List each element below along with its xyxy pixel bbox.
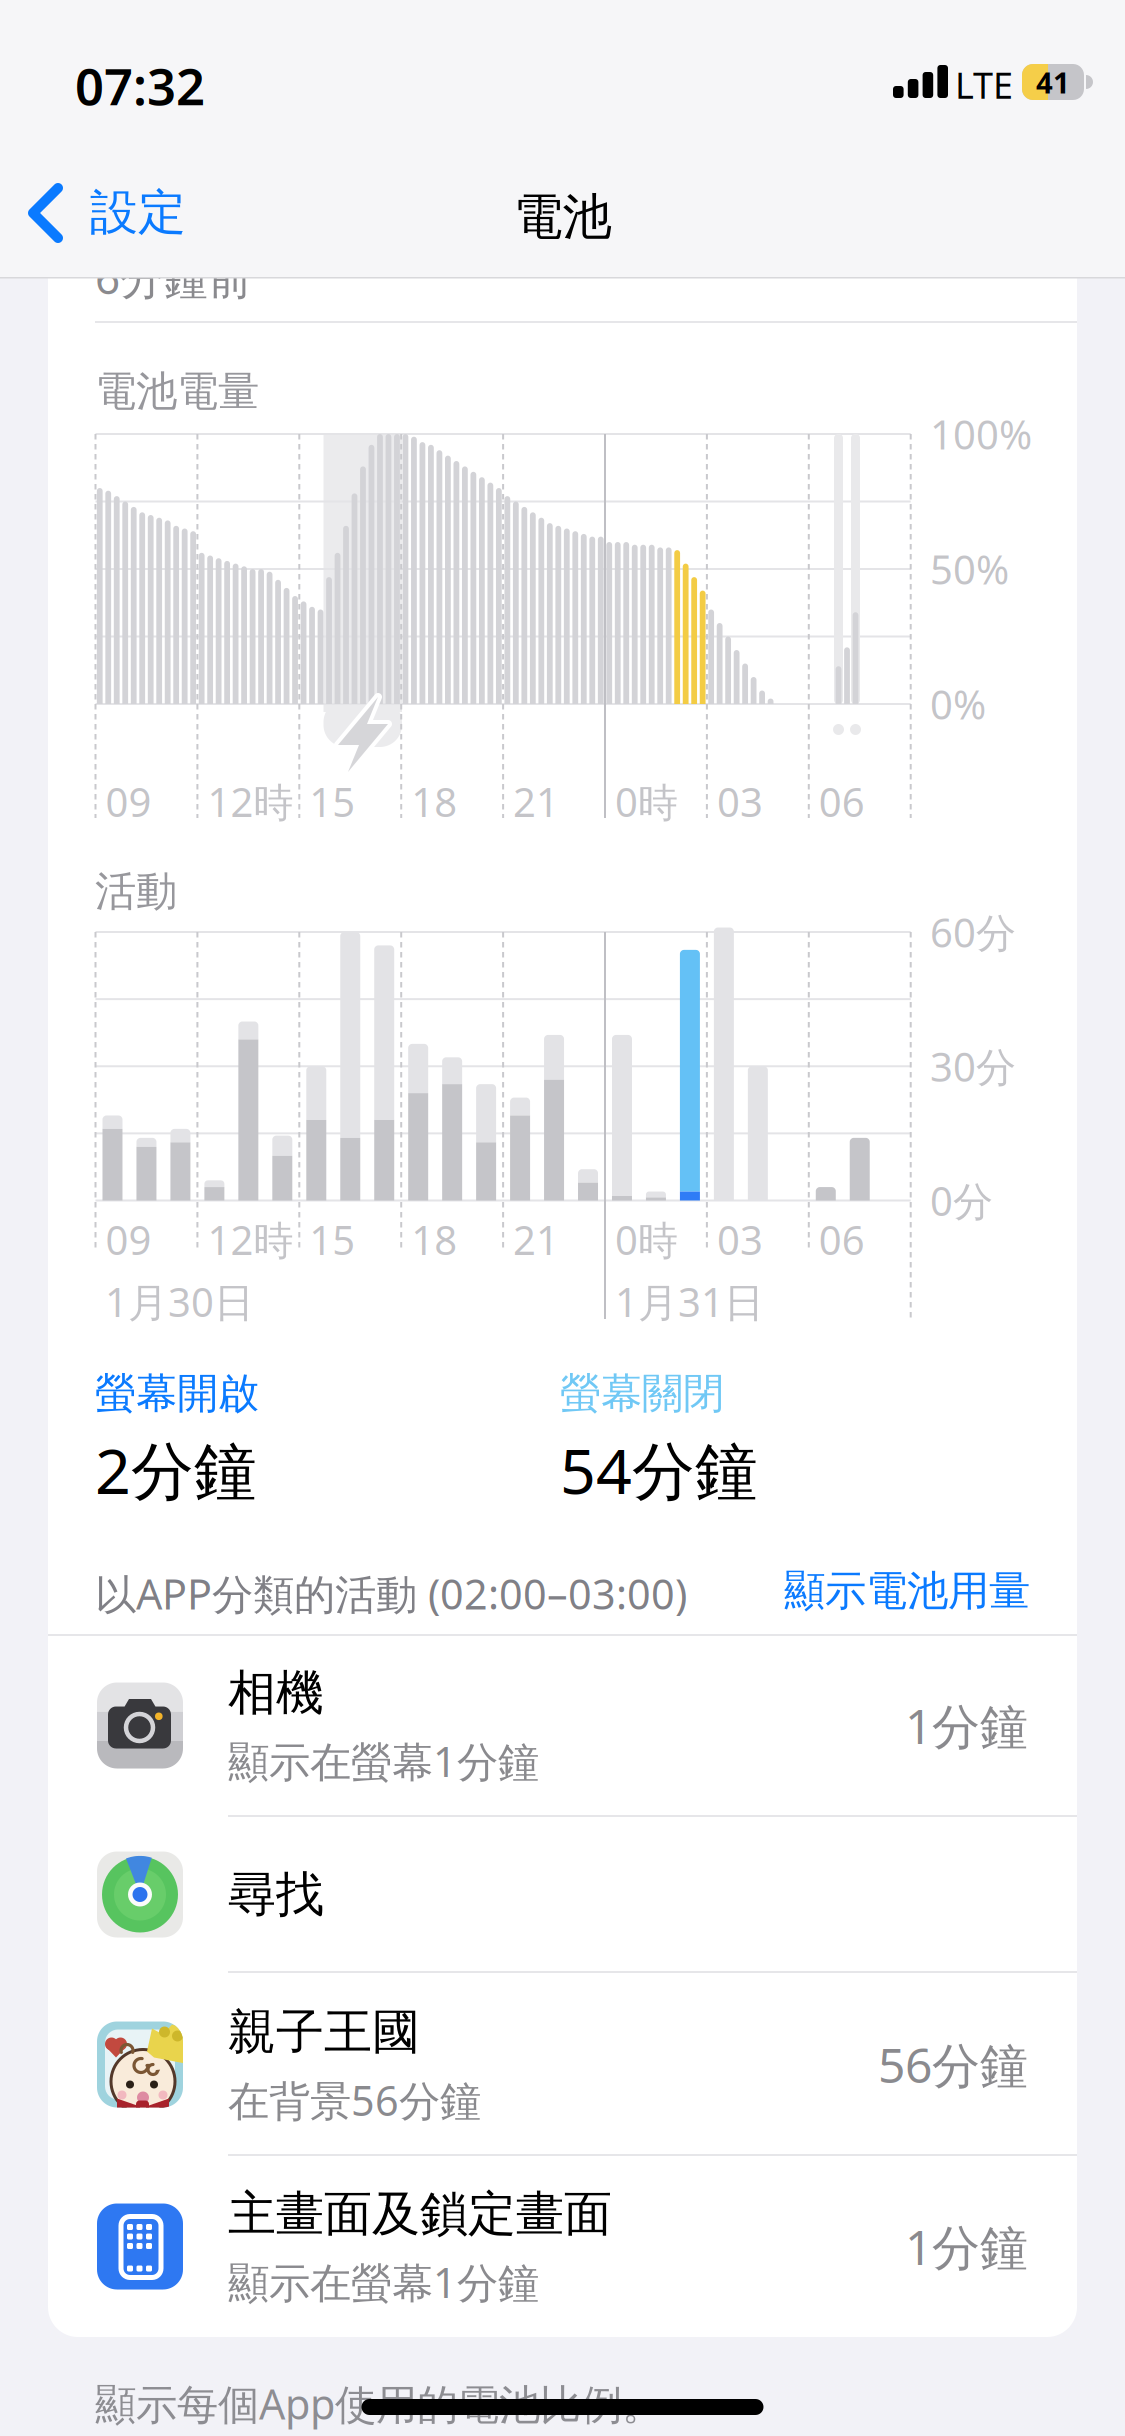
staticText: 18: [411, 1213, 457, 1266]
staticText: 41: [1036, 62, 1070, 101]
staticText: 活動: [95, 866, 177, 917]
button[interactable]: 主畫面及鎖定畫面: [48, 2156, 1077, 2337]
button[interactable]: 設定: [0, 0, 230, 277]
staticText: 顯示在螢幕1分鐘: [228, 1733, 539, 1788]
staticText: 06: [819, 1213, 865, 1266]
staticText: 顯示在螢幕1分鐘: [228, 2254, 539, 2309]
staticText: 1月31日: [615, 1275, 764, 1328]
staticText: 螢幕開啟: [95, 1368, 259, 1419]
staticText: 電池電量: [95, 366, 259, 417]
staticText: 螢幕關閉: [560, 1368, 724, 1419]
staticText: 在背景56分鐘: [228, 2072, 481, 2127]
staticText: 相機: [228, 1663, 324, 1722]
staticText: 顯示電池用量: [784, 1566, 1030, 1616]
staticText: 顯示每個App使用的電池比例。: [95, 2376, 663, 2431]
staticText: 54分鐘: [560, 1428, 758, 1511]
staticText: 03: [717, 1213, 763, 1266]
staticText: 07:32: [75, 52, 205, 119]
staticText: 06: [819, 775, 865, 828]
staticText: 0時: [615, 775, 678, 828]
staticText: 親子王國: [228, 2002, 420, 2061]
staticText: 設定: [90, 183, 186, 242]
button[interactable]: 親子王國: [48, 1973, 1077, 2156]
staticText: 1分鐘: [905, 2215, 1028, 2278]
staticText: 09: [105, 1213, 151, 1266]
staticText: 尋找: [228, 1865, 324, 1924]
staticText: 1分鐘: [905, 1694, 1028, 1757]
staticText: 12時: [207, 775, 293, 828]
staticText: 30分: [930, 1040, 1016, 1093]
button[interactable]: 顯示電池用量: [630, 1566, 1030, 1616]
staticText: 15: [309, 1213, 355, 1266]
staticText: 15: [309, 775, 355, 828]
staticText: 21: [513, 1213, 559, 1266]
staticText: 60分: [930, 905, 1016, 958]
staticText: 電池: [513, 187, 611, 247]
staticText: 6分鐘前: [95, 248, 252, 306]
staticText: 21: [513, 775, 559, 828]
staticText: 12時: [207, 1213, 293, 1266]
staticText: 1月30日: [105, 1275, 254, 1328]
staticText: 18: [411, 775, 457, 828]
button[interactable]: 尋找: [48, 1816, 1077, 1973]
staticText: 56分鐘: [878, 2033, 1028, 2096]
staticText: 03: [717, 775, 763, 828]
staticText: 0時: [615, 1213, 678, 1266]
button[interactable]: 相機: [48, 1635, 1077, 1816]
staticText: 0%: [930, 677, 986, 730]
staticText: 2分鐘: [95, 1428, 257, 1511]
staticText: 主畫面及鎖定畫面: [228, 2184, 612, 2243]
staticText: LTE: [955, 61, 1013, 109]
staticText: 0分: [930, 1174, 993, 1227]
staticText: 100%: [930, 407, 1032, 460]
staticText: 09: [105, 775, 151, 828]
staticText: 以APP分類的活動 (02:00–03:00): [95, 1566, 687, 1621]
staticText: 50%: [930, 542, 1009, 595]
